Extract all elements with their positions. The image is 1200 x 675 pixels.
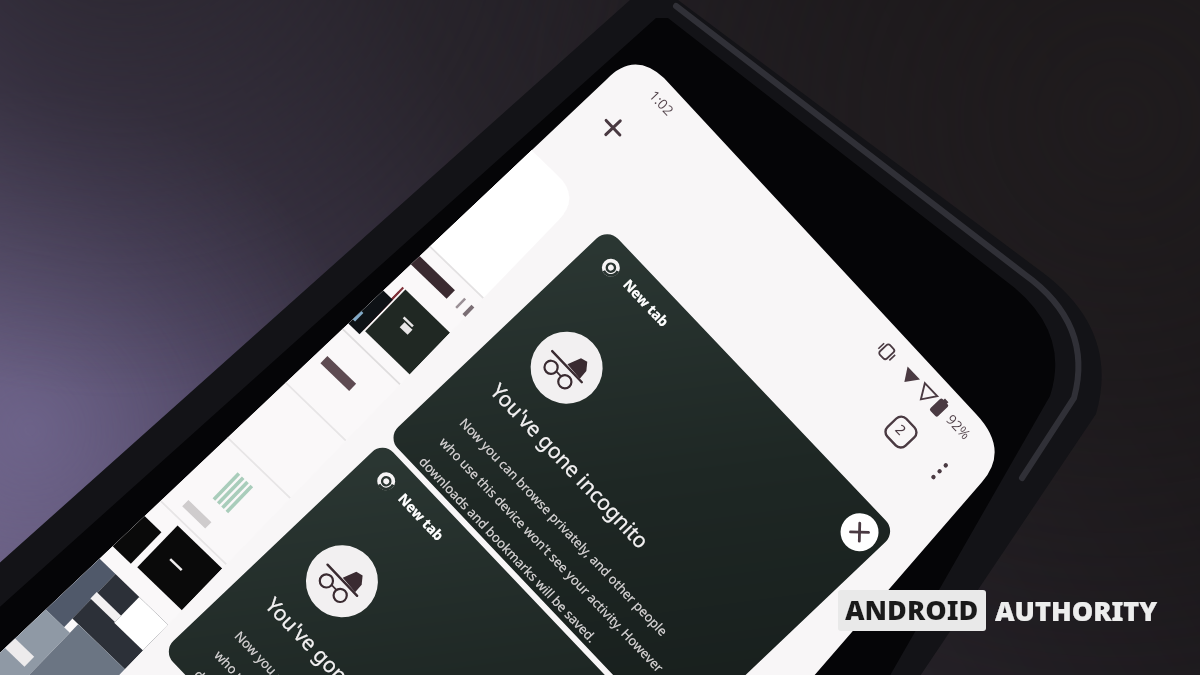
staticText: Now you can browse privately, and other … xyxy=(415,414,688,675)
staticText: Now you can browse privately, and other … xyxy=(190,627,463,675)
staticText: 92% xyxy=(942,410,975,443)
staticText: ANDROID xyxy=(845,591,979,628)
staticText: New tab xyxy=(394,489,449,545)
staticText: 1:02 xyxy=(645,86,678,119)
staticText: New tab xyxy=(619,275,674,331)
staticText: You've gone incognito xyxy=(484,377,655,555)
staticText: 2 xyxy=(891,420,911,440)
staticText: You've gone incognito xyxy=(259,591,430,675)
staticText: AUTHORITY xyxy=(995,592,1158,629)
